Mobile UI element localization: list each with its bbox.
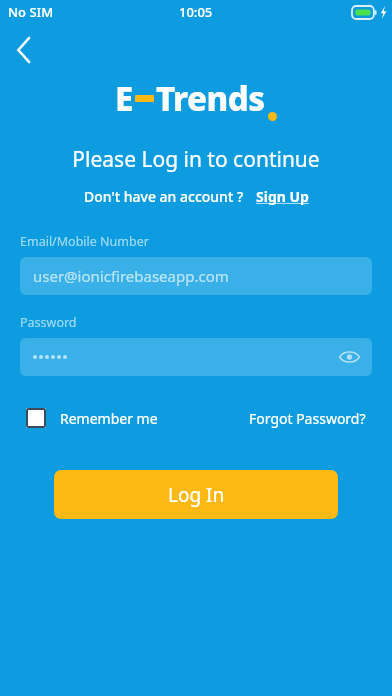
staticText: No SIM bbox=[8, 3, 54, 21]
button[interactable]: Remember me bbox=[26, 408, 158, 428]
staticText: Sign Up bbox=[256, 187, 309, 206]
button[interactable]: Sign Up bbox=[256, 187, 309, 206]
button[interactable]: user@ionicfirebaseapp.com bbox=[20, 257, 372, 295]
staticText: Forgot Password? bbox=[249, 409, 366, 428]
button[interactable]: Forgot Password? bbox=[249, 409, 366, 428]
button[interactable]: Back bbox=[2, 28, 46, 72]
staticText: Remember me bbox=[60, 409, 158, 428]
staticText: 10:05 bbox=[179, 3, 213, 21]
staticText: Password bbox=[20, 314, 77, 331]
staticText: Please Log in to continue bbox=[0, 145, 392, 174]
button[interactable]: Show password bbox=[20, 338, 372, 376]
staticText: Email/Mobile Number bbox=[20, 233, 149, 250]
staticText: E bbox=[115, 76, 133, 121]
button[interactable]: Show password bbox=[334, 342, 364, 372]
staticText: Trends bbox=[156, 76, 265, 121]
staticText: Don't have an account ? bbox=[84, 187, 244, 206]
button[interactable]: Log In bbox=[54, 470, 338, 519]
staticText: user@ionicfirebaseapp.com bbox=[33, 266, 229, 286]
staticText: Log In bbox=[168, 482, 225, 508]
